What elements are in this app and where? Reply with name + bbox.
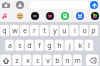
button[interactable]: x	[23, 55, 32, 66]
button[interactable]: Digital Touch	[45, 11, 54, 20]
staticText: w	[12, 26, 18, 36]
button[interactable]: Memoji	[15, 11, 24, 20]
staticText: q	[2, 26, 7, 36]
staticText: v	[46, 56, 50, 66]
staticText: t	[43, 26, 46, 36]
staticText: u	[62, 26, 67, 36]
staticText: y	[53, 26, 57, 36]
button[interactable]: Backspace	[86, 55, 99, 66]
button[interactable]: c	[33, 55, 42, 66]
staticText: g	[47, 41, 52, 51]
button[interactable]: h	[55, 40, 64, 51]
button[interactable]: e	[20, 25, 29, 36]
staticText: h	[57, 41, 62, 51]
button[interactable]: v	[43, 55, 52, 66]
button[interactable]: Photos	[90, 11, 99, 20]
staticText: a	[8, 41, 12, 51]
button[interactable]: y	[50, 25, 59, 36]
button[interactable]: m	[73, 55, 82, 66]
button[interactable]: w	[10, 25, 19, 36]
staticText: i	[74, 26, 76, 36]
button[interactable]: Cash	[60, 11, 69, 20]
staticText: o	[82, 26, 87, 36]
staticText: l	[88, 41, 90, 51]
button[interactable]: u	[60, 25, 69, 36]
button[interactable]: Store	[75, 11, 84, 20]
button[interactable]: k	[75, 40, 84, 51]
button[interactable]: f	[35, 40, 44, 51]
staticText: c	[36, 56, 40, 66]
staticText: b	[55, 56, 60, 66]
button[interactable]: l	[84, 40, 93, 51]
button[interactable]: r	[30, 25, 39, 36]
button[interactable]: z	[12, 55, 21, 66]
button[interactable]: o	[80, 25, 89, 36]
button[interactable]: d	[25, 40, 34, 51]
staticText: d	[27, 41, 32, 51]
button[interactable]: p	[89, 25, 98, 36]
button[interactable]: q	[0, 25, 9, 36]
button[interactable]: i	[70, 25, 79, 36]
staticText: m	[74, 56, 81, 66]
button[interactable]: Send	[90, 1, 98, 9]
button[interactable]: t	[40, 25, 49, 36]
staticText: f	[38, 41, 41, 51]
button[interactable]: j	[65, 40, 74, 51]
staticText: z	[15, 56, 19, 66]
button[interactable]: s	[15, 40, 24, 51]
staticText: j	[69, 41, 71, 51]
button[interactable]: Apps	[16, 1, 24, 9]
staticText: e	[23, 26, 27, 36]
button[interactable]: Shift	[0, 55, 11, 66]
staticText: p	[91, 26, 96, 36]
button[interactable]: n	[63, 55, 72, 66]
button[interactable]: Camera	[1, 1, 10, 9]
staticText: k	[78, 41, 82, 51]
button[interactable]: g	[45, 40, 54, 51]
button[interactable]: Images	[30, 11, 39, 20]
staticText: n	[65, 56, 70, 66]
button[interactable]: Music	[0, 11, 9, 20]
staticText: x	[26, 56, 30, 66]
staticText: r	[33, 26, 36, 36]
staticText: s	[18, 41, 22, 51]
button[interactable]: a	[5, 40, 14, 51]
button[interactable]: b	[53, 55, 62, 66]
